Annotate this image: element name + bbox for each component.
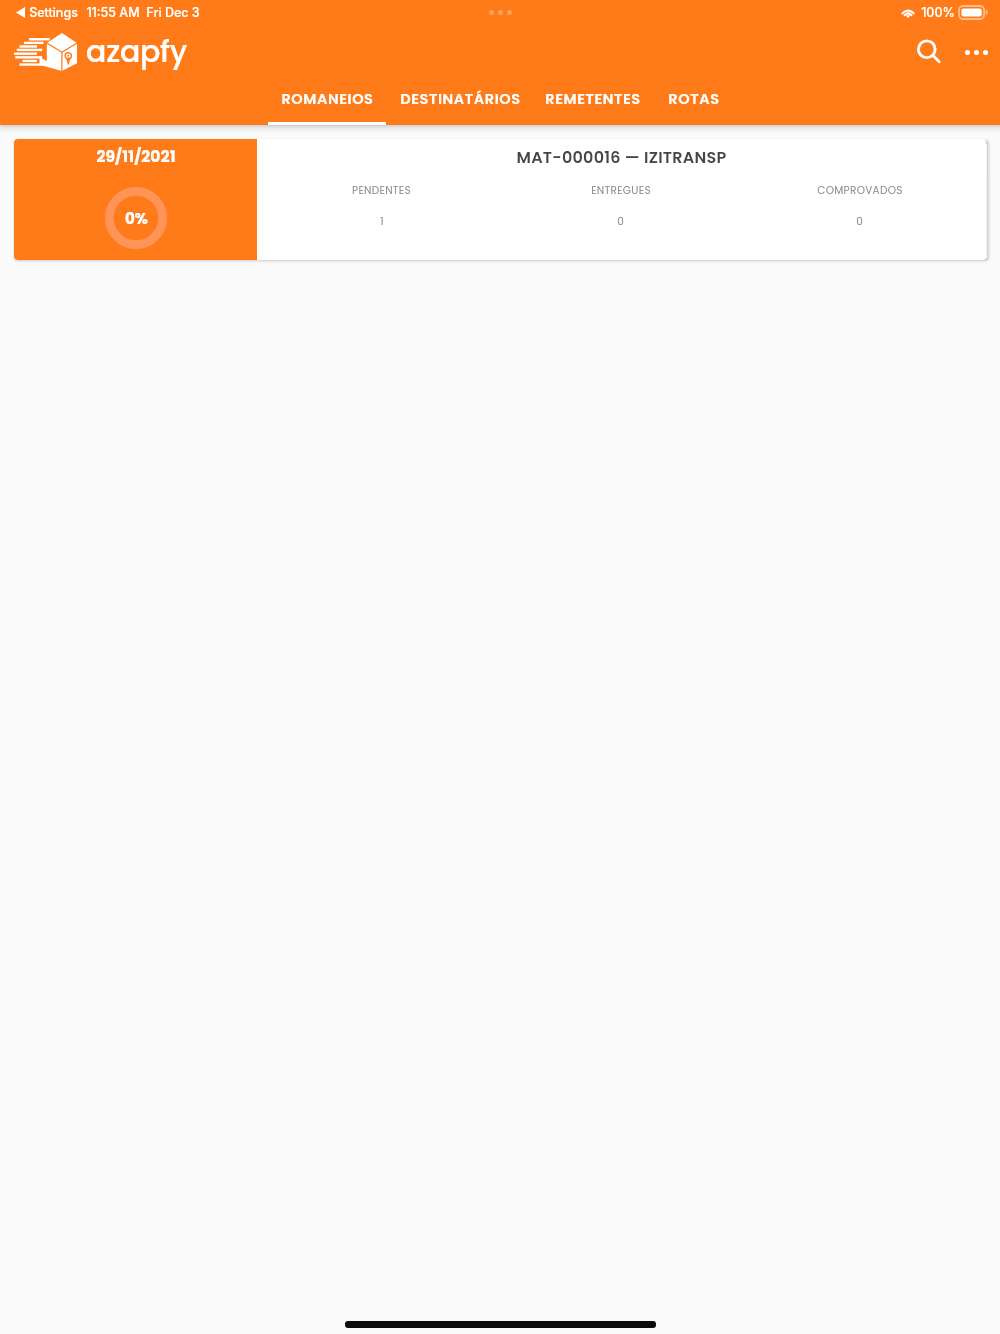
- staticText: 0: [856, 214, 863, 229]
- staticText: 29/11/2021: [96, 146, 176, 168]
- staticText: DESTINATÁRIOS: [400, 89, 521, 109]
- button[interactable]: ROMANEIOS: [268, 81, 386, 125]
- staticText: Settings: [29, 5, 78, 20]
- staticText: ENTREGUES: [591, 183, 651, 198]
- staticText: REMETENTES: [545, 89, 641, 109]
- staticText: 1: [380, 214, 384, 229]
- staticText: 11:55 AM: [86, 5, 140, 20]
- staticText: 0%: [125, 208, 148, 229]
- staticText: Fri Dec 3: [146, 5, 200, 20]
- staticText: ROTAS: [668, 89, 720, 109]
- staticText: MAT-000016 — IZITRANSP: [516, 146, 727, 168]
- button[interactable]: DESTINATÁRIOS: [389, 81, 532, 125]
- staticText: azapfy: [86, 31, 187, 73]
- staticText: COMPROVADOS: [817, 183, 903, 198]
- button[interactable]: 29/11/2021: [14, 139, 986, 260]
- staticText: 100%: [921, 5, 955, 20]
- staticText: ROMANEIOS: [281, 89, 374, 109]
- staticText: PENDENTES: [352, 183, 411, 198]
- button[interactable]: More options: [956, 32, 996, 72]
- button[interactable]: ROTAS: [656, 81, 731, 125]
- staticText: 0: [617, 214, 624, 229]
- button[interactable]: Search: [906, 29, 952, 75]
- button[interactable]: REMETENTES: [529, 81, 656, 125]
